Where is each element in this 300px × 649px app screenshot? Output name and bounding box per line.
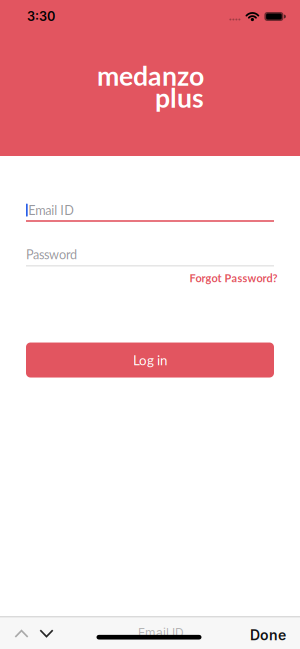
button[interactable]: Previous field xyxy=(0,629,28,638)
button[interactable]: Done xyxy=(250,625,300,641)
staticText: Email ID xyxy=(138,625,184,640)
staticText: Log in xyxy=(133,352,167,368)
staticText: Done xyxy=(250,627,286,643)
staticText: Forgot Password? xyxy=(189,271,277,284)
button[interactable]: Forgot Password? xyxy=(189,271,277,284)
button[interactable]: Password xyxy=(26,247,274,266)
staticText: 3:30 xyxy=(27,9,55,24)
staticText: plus xyxy=(155,81,204,113)
button[interactable]: Log in xyxy=(26,342,274,377)
button[interactable]: Email ID xyxy=(26,202,274,222)
button[interactable]: Next field xyxy=(28,629,53,638)
staticText: medanzo xyxy=(97,59,204,91)
staticText: Email ID xyxy=(28,202,74,218)
staticText: Password xyxy=(26,247,77,262)
